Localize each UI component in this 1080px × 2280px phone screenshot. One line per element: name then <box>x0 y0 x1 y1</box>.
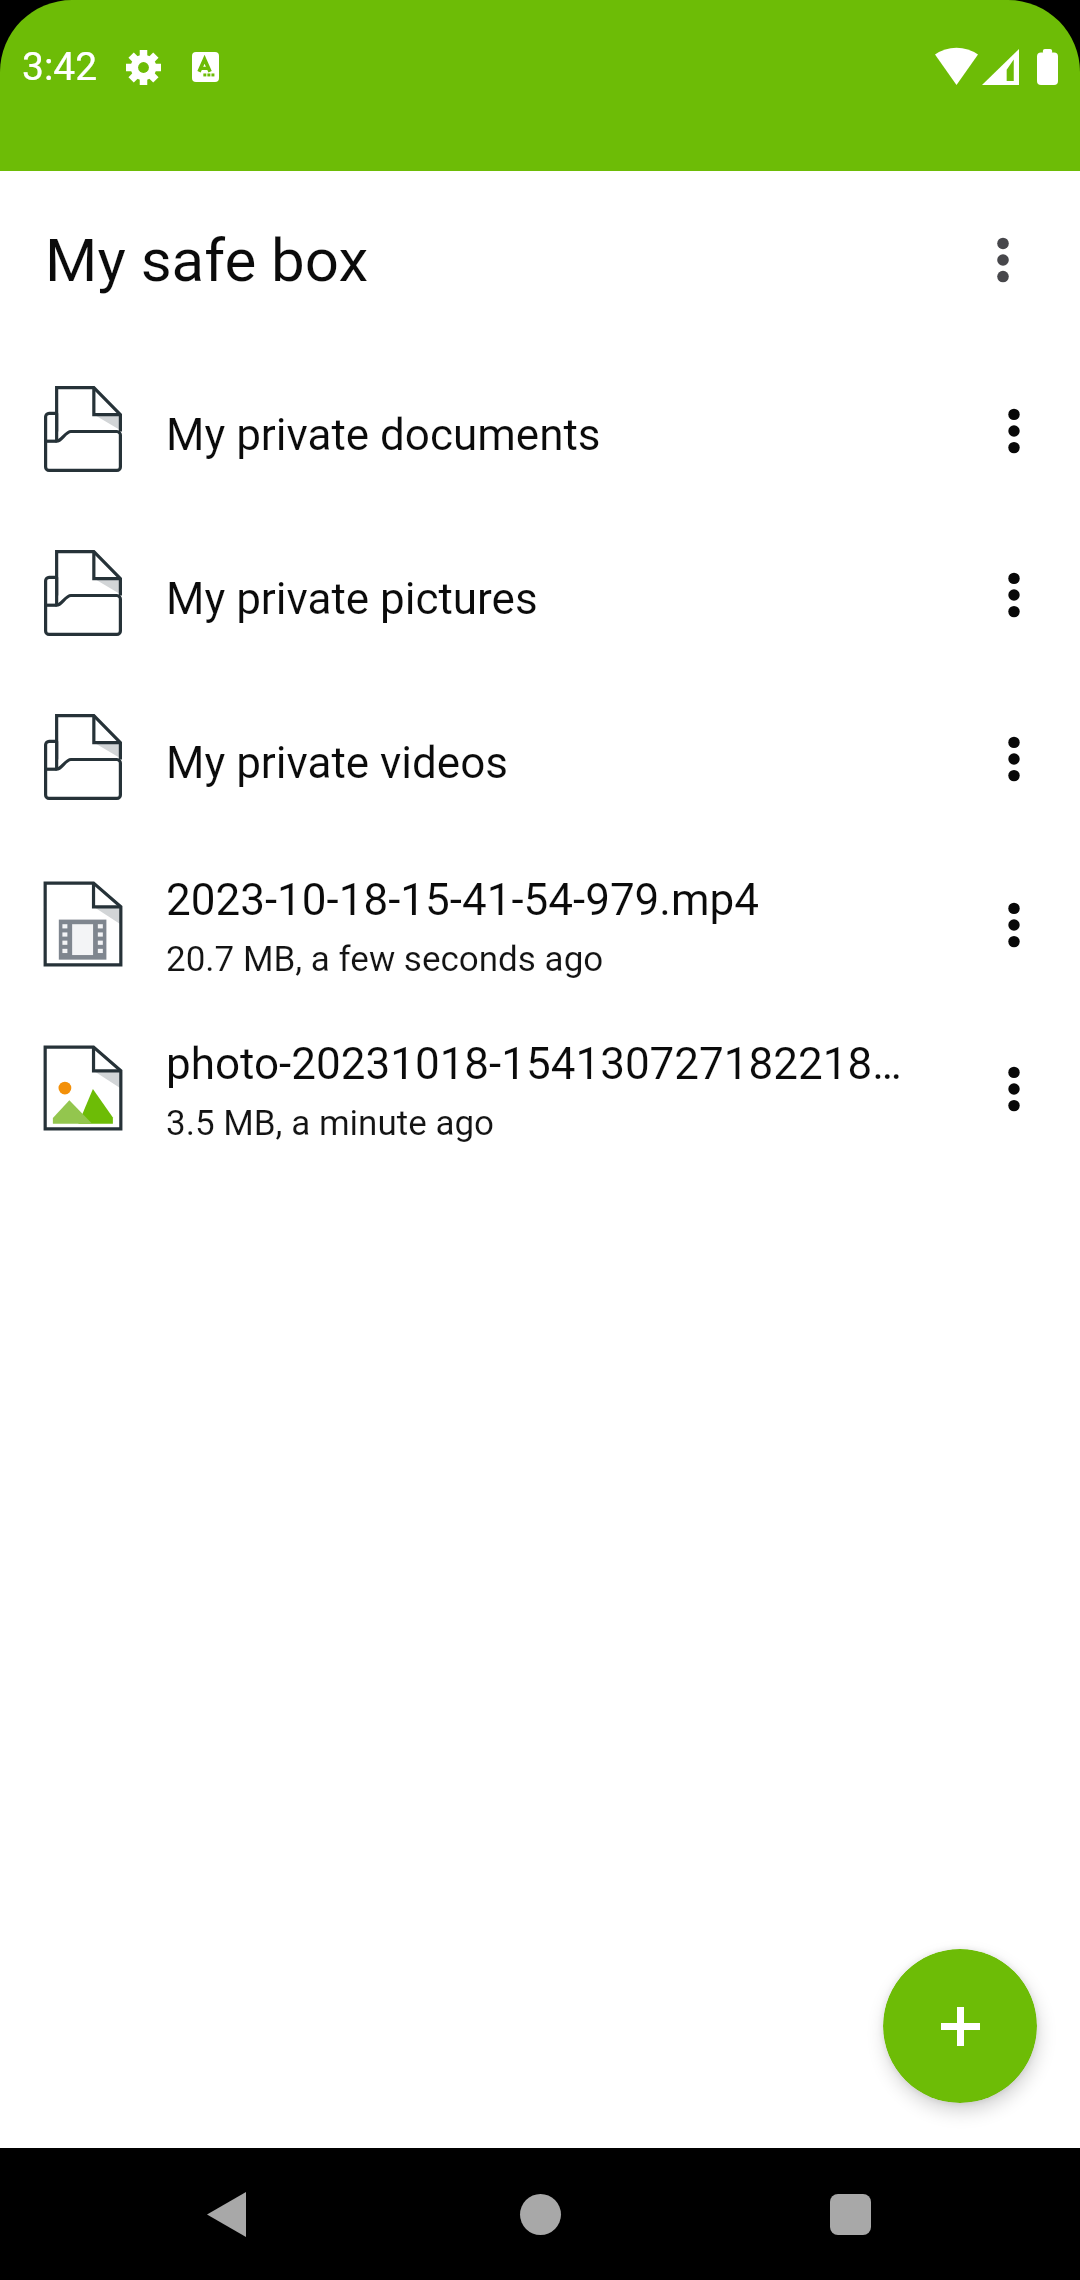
button[interactable]: Back <box>176 2164 276 2264</box>
button[interactable]: Item options <box>964 545 1064 645</box>
staticText: My private videos <box>166 737 508 789</box>
button[interactable]: Add <box>883 1949 1037 2103</box>
button[interactable]: Item options <box>964 709 1064 809</box>
button[interactable]: photo-20231018-154130727182218… <box>0 1005 1080 1169</box>
staticText: 3.5 MB, a minute ago <box>166 1103 495 1144</box>
staticText: 3:42 <box>22 44 98 90</box>
button[interactable]: Item options <box>964 1039 1064 1139</box>
button[interactable]: Item options <box>964 381 1064 481</box>
button[interactable]: 2023-10-18-15-41-54-979.mp4 <box>0 841 1080 1005</box>
button[interactable]: My private documents <box>0 349 1080 513</box>
staticText: photo-20231018-154130727182218… <box>166 1038 902 1090</box>
button[interactable]: Recents <box>800 2164 900 2264</box>
staticText: 2023-10-18-15-41-54-979.mp4 <box>166 874 759 926</box>
button[interactable]: My private pictures <box>0 513 1080 677</box>
button[interactable]: More options <box>953 210 1053 310</box>
staticText: 20.7 MB, a few seconds ago <box>166 939 604 980</box>
button[interactable]: My private videos <box>0 677 1080 841</box>
button[interactable]: Home <box>490 2164 590 2264</box>
staticText: My private pictures <box>166 573 538 625</box>
staticText: My private documents <box>166 409 601 461</box>
staticText: My safe box <box>45 225 369 295</box>
button[interactable]: Item options <box>964 875 1064 975</box>
